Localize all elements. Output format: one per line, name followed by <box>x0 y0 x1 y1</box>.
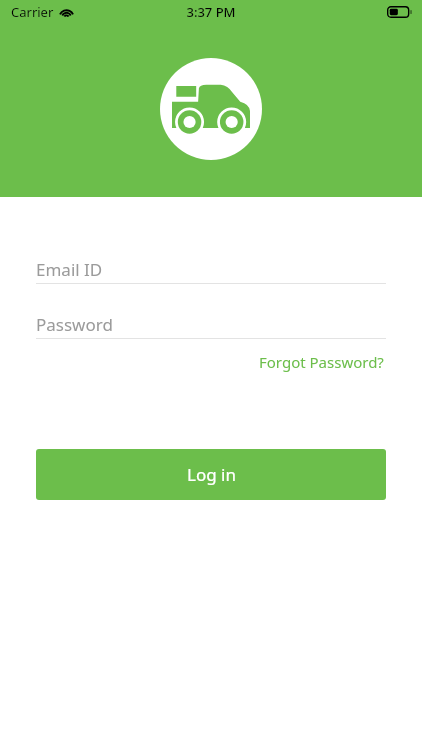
button[interactable]: Password <box>36 311 386 339</box>
staticText: Carrier <box>11 3 54 21</box>
staticText: Email ID <box>36 258 103 281</box>
staticText: Forgot Password? <box>259 352 384 372</box>
button[interactable]: Log in <box>36 449 386 500</box>
other: Truck logo <box>172 84 250 134</box>
button[interactable]: Forgot Password? <box>257 348 386 376</box>
staticText: Password <box>36 313 113 336</box>
staticText: Log in <box>187 463 236 486</box>
staticText: 3:37 PM <box>186 3 236 21</box>
button[interactable]: Email ID <box>36 256 386 284</box>
